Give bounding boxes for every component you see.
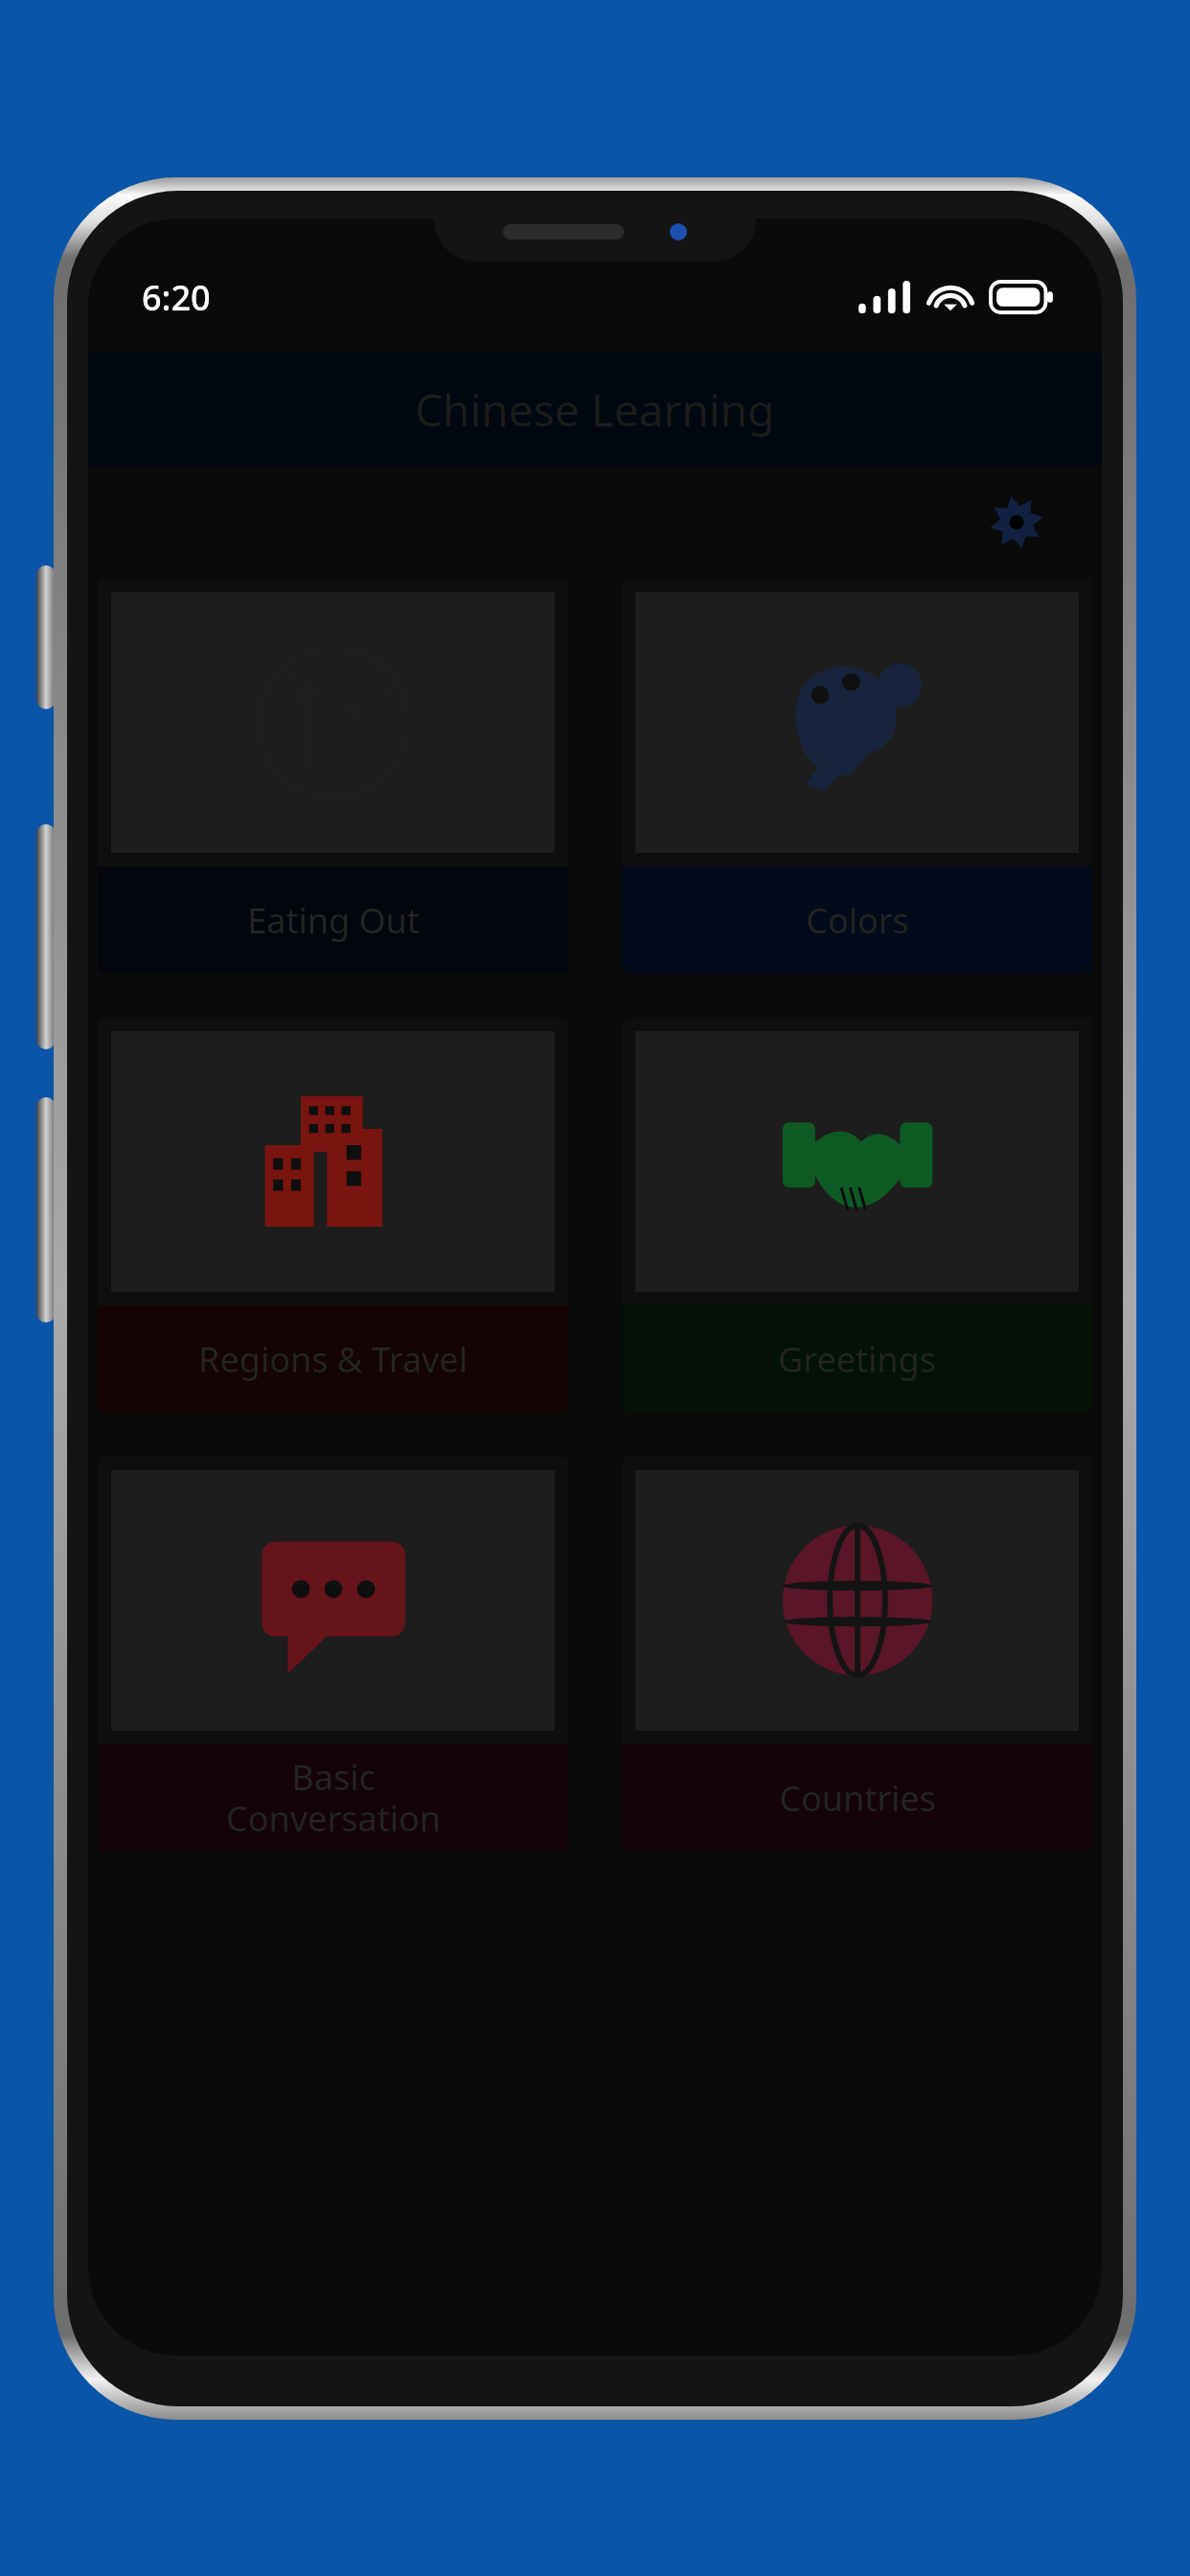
button[interactable]: Chinese Learning: [88, 353, 1102, 466]
button[interactable]: Colors: [622, 579, 1092, 974]
button[interactable]: Greetings: [622, 1018, 1092, 1413]
staticText: Greetings: [778, 1336, 936, 1383]
button[interactable]: Countries: [622, 1457, 1092, 1851]
staticText: 6:20: [142, 274, 211, 321]
staticText: Regions & Travel: [198, 1336, 468, 1383]
button[interactable]: Basic Conversation: [98, 1457, 568, 1851]
staticText: Colors: [806, 897, 909, 944]
staticText: Basic Conversation: [226, 1754, 441, 1842]
staticText: Countries: [779, 1775, 936, 1822]
button[interactable]: Eating Out: [98, 579, 568, 974]
staticText: Eating Out: [247, 897, 420, 944]
button[interactable]: Regions & Travel: [98, 1018, 568, 1413]
button[interactable]: Settings: [989, 494, 1044, 550]
staticText: Chinese Learning: [415, 379, 775, 440]
